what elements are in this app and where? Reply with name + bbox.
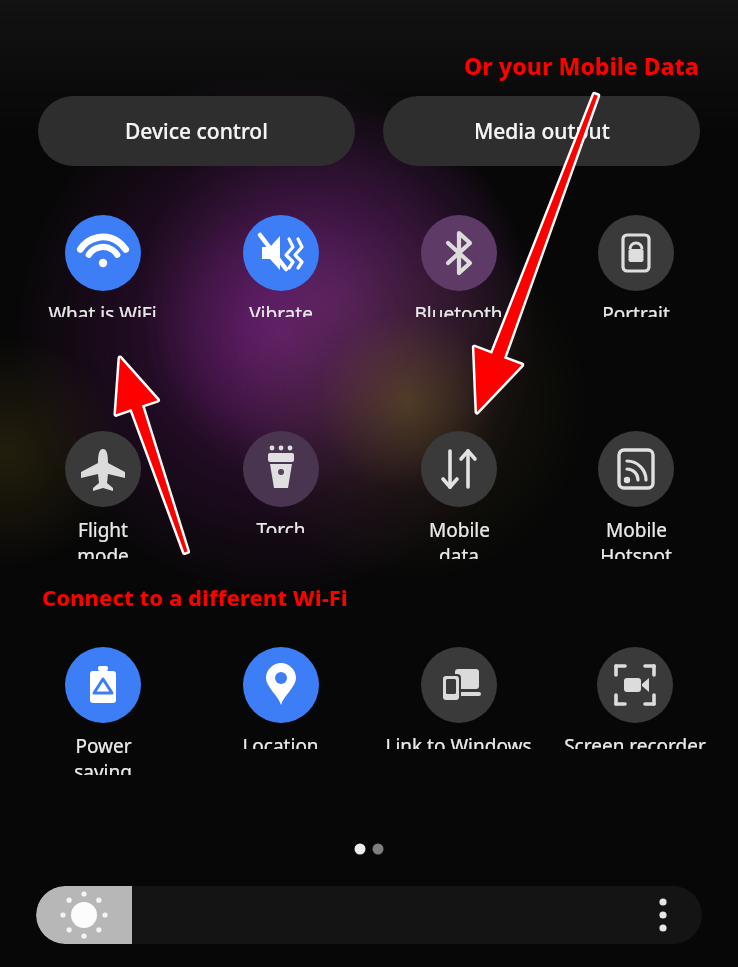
staticText: Screen recorder (564, 733, 706, 749)
staticText: Connect to a different Wi-Fi (42, 582, 348, 612)
staticText: Mobile (429, 517, 490, 543)
button[interactable]: Location (203, 643, 358, 749)
staticText: What is WiFi (48, 301, 157, 317)
button[interactable]: Mobile (558, 427, 713, 559)
button[interactable]: Screen recorder (535, 643, 735, 749)
button[interactable]: Media output (383, 96, 700, 166)
button[interactable]: Mobile (381, 427, 536, 559)
staticText: Flight (78, 517, 128, 543)
button[interactable]: Brightness slider (36, 886, 702, 944)
button[interactable]: Device control (38, 96, 355, 166)
staticText: Portrait (602, 301, 670, 317)
button[interactable]: What is WiFi (25, 211, 180, 317)
button[interactable]: Flight (25, 427, 180, 559)
staticText: Bluetooth (414, 301, 503, 317)
button[interactable]: Portrait (558, 211, 713, 317)
staticText: Device control (125, 117, 268, 146)
staticText: Or your Mobile Data (464, 50, 699, 81)
staticText: Mobile (606, 517, 667, 543)
staticText: mode (77, 543, 129, 559)
staticText: Torch (256, 517, 306, 533)
button[interactable]: Torch (203, 427, 358, 533)
button[interactable]: Bluetooth (381, 211, 536, 317)
staticText: Location (242, 733, 319, 749)
staticText: Link to Windows (385, 733, 532, 749)
button[interactable]: Link to Windows (358, 643, 558, 749)
button[interactable]: Vibrate (203, 211, 358, 317)
staticText: saving (74, 759, 132, 775)
button[interactable]: More brightness options (646, 898, 680, 932)
staticText: Vibrate (249, 301, 313, 317)
staticText: Power (75, 733, 132, 759)
staticText: Hotspot (600, 543, 672, 559)
button[interactable]: Power (25, 643, 180, 775)
staticText: Media output (474, 117, 610, 146)
staticText: data (439, 543, 479, 559)
